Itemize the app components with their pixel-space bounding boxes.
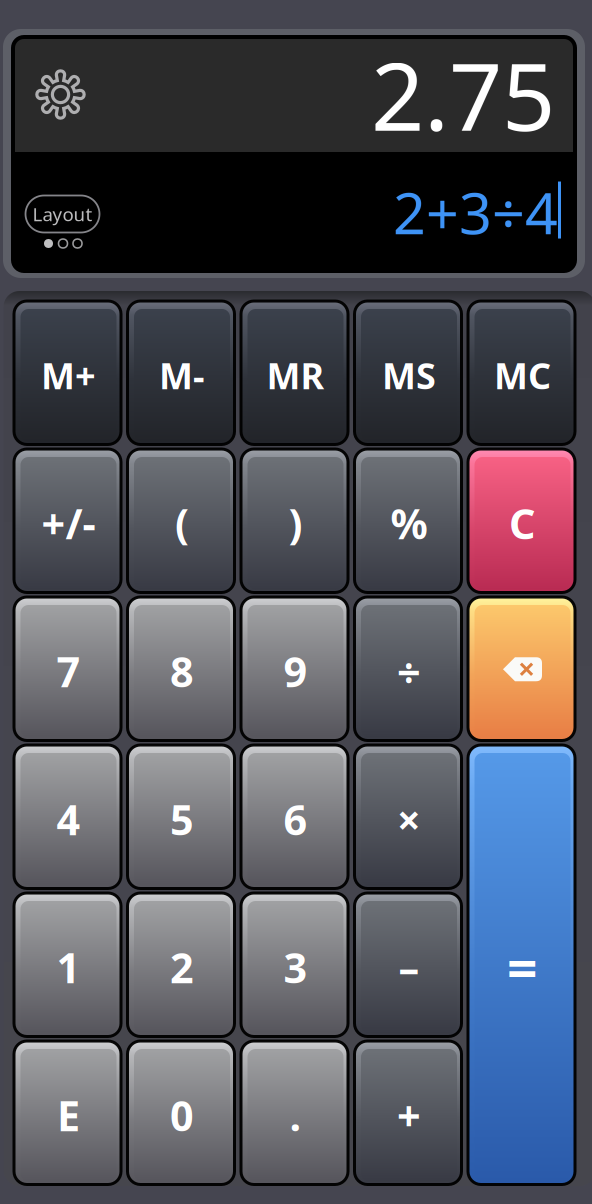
button[interactable]: MR [241,301,348,444]
button[interactable]: M- [127,301,234,444]
button[interactable]: Settings [13,61,96,128]
button[interactable]: 0 [127,1041,234,1184]
button[interactable]: 1 [14,893,121,1036]
staticText: . [289,1088,301,1143]
staticText: 1 [56,940,80,995]
button[interactable]: M+ [14,301,121,444]
staticText: M- [159,351,205,399]
button[interactable]: MC [468,301,575,444]
staticText: MC [494,351,551,399]
staticText: ) [288,496,302,551]
button[interactable]: 2 [127,893,234,1036]
staticText: 0 [170,1088,194,1143]
button[interactable]: % [354,449,461,592]
button[interactable]: 7 [14,597,121,740]
button[interactable]: 4 [14,745,121,888]
staticText: C [509,496,536,551]
staticText: × [397,792,421,847]
staticText: 2+3÷4 [393,174,558,250]
button[interactable]: MS [354,301,461,444]
staticText: 8 [170,644,194,699]
staticText: +/- [41,496,95,551]
staticText: 4 [56,792,80,847]
staticText: % [390,496,427,551]
button[interactable]: 6 [241,745,348,888]
staticText: ÷ [397,644,421,699]
staticText: M+ [41,351,96,399]
staticText: MR [266,351,324,399]
button[interactable]: +/- [14,449,121,592]
staticText: MS [382,351,436,399]
button[interactable]: C [468,449,575,592]
button[interactable]: = [468,745,575,1184]
button[interactable]: 9 [241,597,348,740]
staticText: Layout [32,202,92,226]
button[interactable]: . [241,1041,348,1184]
button[interactable]: × [354,745,461,888]
button[interactable]: E [14,1041,121,1184]
staticText: 5 [170,792,194,847]
staticText: 7 [56,644,80,699]
button[interactable]: 3 [241,893,348,1036]
staticText: = [507,932,538,1003]
staticText: – [398,940,419,995]
staticText: 2.75 [371,32,555,156]
button[interactable]: ÷ [354,597,461,740]
button[interactable]: – [354,893,461,1036]
button[interactable]: 8 [127,597,234,740]
staticText: 9 [283,644,307,699]
staticText: E [57,1088,80,1143]
button[interactable]: ) [241,449,348,592]
staticText: 3 [283,940,307,995]
button[interactable]: Layout [25,195,99,232]
staticText: 2 [170,940,194,995]
button[interactable] [468,597,575,740]
staticText: 6 [283,792,307,847]
button[interactable]: + [354,1041,461,1184]
button[interactable]: ( [127,449,234,592]
button[interactable]: 5 [127,745,234,888]
staticText: + [397,1088,421,1143]
staticText: ( [175,496,189,551]
